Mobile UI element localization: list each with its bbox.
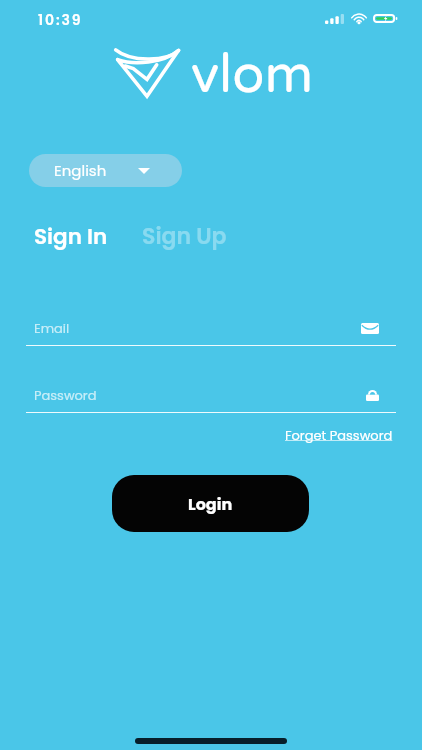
staticText: 10:39: [38, 10, 83, 30]
button[interactable]: Login: [112, 475, 309, 532]
other: Show password: [366, 390, 379, 401]
staticText: Password: [34, 386, 366, 404]
other: Email icon: [361, 323, 379, 334]
staticText: English: [54, 160, 107, 181]
staticText: Sign Up: [142, 221, 227, 252]
staticText: Email: [34, 319, 361, 337]
button[interactable]: Sign Up: [142, 221, 227, 252]
button[interactable]: Sign In: [34, 221, 108, 251]
staticText: vlom: [191, 43, 314, 107]
staticText: Login: [188, 493, 233, 515]
staticText: Forget Password: [285, 426, 393, 444]
staticText: Sign In: [34, 221, 108, 251]
button[interactable]: Forget Password: [285, 426, 393, 444]
button[interactable]: English: [29, 154, 182, 187]
